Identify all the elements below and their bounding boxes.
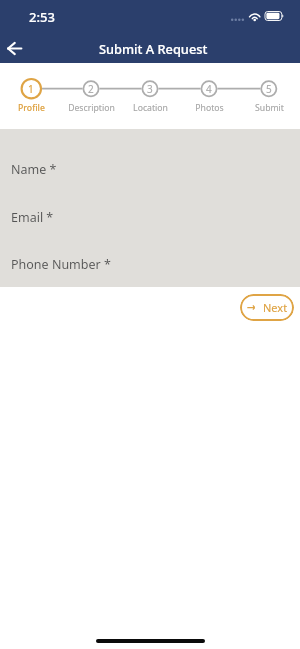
staticText: 2 (88, 82, 94, 96)
button[interactable]: Phone Number * (0, 251, 300, 277)
button[interactable]: Next (240, 294, 294, 321)
staticText: 4 (206, 82, 212, 96)
button[interactable]: 2 (56, 72, 126, 118)
staticText: Profile (18, 102, 45, 114)
staticText: Email * (11, 209, 54, 226)
button[interactable]: 5 (234, 72, 300, 118)
staticText: Submit A Request (99, 40, 208, 57)
button[interactable]: Email * (0, 204, 300, 230)
staticText: Phone Number * (11, 256, 111, 273)
staticText: Location (133, 102, 168, 114)
staticText: Next (263, 300, 288, 315)
staticText: Description (68, 102, 115, 114)
staticText: 3 (147, 82, 153, 96)
button[interactable]: Back (0, 34, 28, 62)
staticText: 2:53 (29, 8, 55, 26)
button[interactable]: 3 (115, 72, 185, 118)
staticText: Name * (11, 161, 57, 178)
button[interactable]: 4 (174, 72, 244, 118)
button[interactable]: 1 (0, 72, 66, 118)
staticText: 5 (266, 82, 272, 96)
staticText: Photos (195, 102, 224, 114)
button[interactable]: Name * (0, 156, 300, 182)
staticText: 1 (28, 82, 34, 96)
staticText: Submit (255, 102, 284, 114)
